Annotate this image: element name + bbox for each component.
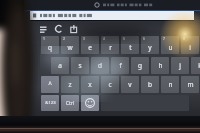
button[interactable]: c: [101, 76, 119, 93]
staticText: y: [148, 43, 152, 52]
button[interactable]: v: [121, 76, 139, 93]
staticText: Ctrl: [66, 100, 74, 107]
staticText: t: [129, 43, 132, 52]
staticText: q: [48, 43, 52, 52]
other: Window title: [94, 2, 154, 8]
button[interactable]: 2: [61, 36, 79, 54]
button[interactable]: b: [141, 76, 159, 93]
button[interactable]: 6: [141, 36, 159, 54]
staticText: 3: [83, 36, 85, 41]
button[interactable]: d: [91, 57, 109, 74]
staticText: w: [67, 43, 73, 52]
staticText: ^: [48, 80, 52, 89]
button[interactable]: Emoji: [81, 95, 99, 111]
button[interactable]: h: [151, 57, 169, 74]
staticText: v: [128, 80, 132, 89]
staticText: d: [98, 61, 102, 70]
staticText: g: [138, 61, 142, 70]
staticText: h: [158, 61, 163, 70]
button[interactable]: 3: [81, 36, 99, 54]
staticText: c: [108, 80, 112, 89]
button[interactable]: s: [71, 57, 89, 74]
staticText: f: [119, 61, 122, 70]
button[interactable]: &123: [41, 95, 59, 111]
staticText: k: [198, 61, 200, 70]
button[interactable]: f: [111, 57, 129, 74]
staticText: n: [168, 80, 173, 89]
button[interactable]: 1: [41, 36, 59, 54]
button[interactable]: 4: [101, 36, 119, 54]
button[interactable]: j: [171, 57, 189, 74]
staticText: 8: [183, 36, 185, 41]
staticText: 1: [43, 36, 45, 41]
staticText: m: [187, 80, 194, 89]
staticText: r: [109, 43, 112, 52]
button[interactable]: 7: [161, 36, 179, 54]
staticText: 6: [143, 36, 145, 41]
staticText: i: [189, 43, 191, 52]
staticText: e: [88, 43, 92, 52]
button[interactable]: 8: [181, 36, 199, 54]
button[interactable]: a: [51, 57, 69, 74]
button[interactable]: z: [61, 76, 79, 93]
button[interactable]: Share: [70, 25, 78, 33]
button[interactable]: Shift: [41, 76, 59, 93]
button[interactable]: k: [191, 57, 200, 74]
staticText: x: [88, 80, 92, 89]
staticText: &123: [45, 100, 56, 106]
staticText: z: [68, 80, 72, 89]
button[interactable]: n: [161, 76, 179, 93]
staticText: 2: [63, 36, 65, 41]
staticText: j: [179, 61, 181, 70]
button[interactable]: Ctrl: [61, 95, 79, 111]
button[interactable]: m: [181, 76, 199, 93]
staticText: a: [58, 61, 62, 70]
button[interactable]: 5: [121, 36, 139, 54]
staticText: 5: [123, 36, 125, 41]
staticText: s: [78, 61, 82, 70]
staticText: u: [168, 43, 173, 52]
button[interactable]: [30, 11, 194, 20]
button[interactable]: Reload: [55, 25, 63, 33]
staticText: 4: [103, 36, 105, 41]
button[interactable]: x: [81, 76, 99, 93]
staticText: b: [148, 80, 152, 89]
staticText: 7: [163, 36, 165, 41]
button[interactable]: g: [131, 57, 149, 74]
button[interactable]: Window title: [24, 0, 200, 10]
button[interactable]: Bookmarks: [40, 25, 48, 33]
